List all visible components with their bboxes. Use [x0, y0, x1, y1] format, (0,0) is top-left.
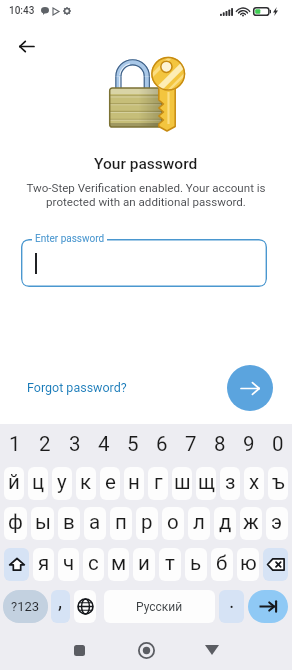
- staticText: Two-Step Verification enabled. Your acco…: [26, 181, 266, 209]
- staticText: щ: [198, 470, 215, 494]
- button[interactable]: ч: [58, 548, 79, 581]
- staticText: ф: [8, 510, 23, 534]
- staticText: 7: [185, 432, 197, 456]
- button[interactable]: л: [188, 507, 210, 540]
- button[interactable]: ?123: [3, 590, 48, 623]
- staticText: ,: [58, 590, 63, 613]
- button[interactable]: о: [162, 507, 184, 540]
- button[interactable]: д: [214, 507, 236, 540]
- staticText: е: [105, 470, 116, 494]
- button[interactable]: Backspace: [263, 548, 288, 581]
- button[interactable]: 4: [89, 432, 118, 460]
- button[interactable]: е: [100, 467, 120, 500]
- button[interactable]: Recents: [61, 632, 97, 668]
- button[interactable]: и: [133, 548, 155, 581]
- button[interactable]: щ: [196, 467, 216, 500]
- staticText: ъ: [272, 470, 285, 494]
- staticText: 9: [243, 432, 255, 456]
- staticText: Русский: [136, 600, 183, 614]
- staticText: о: [167, 510, 179, 534]
- staticText: в: [63, 510, 75, 534]
- staticText: н: [128, 470, 140, 494]
- button[interactable]: 3: [60, 432, 89, 460]
- staticText: .: [229, 590, 235, 613]
- button[interactable]: ы: [31, 507, 54, 540]
- staticText: ж: [243, 510, 259, 534]
- button[interactable]: й: [4, 467, 24, 500]
- button[interactable]: 5: [118, 432, 147, 460]
- button[interactable]: ь: [185, 548, 207, 581]
- button[interactable]: в: [58, 507, 80, 540]
- staticText: х: [249, 470, 260, 494]
- staticText: п: [115, 510, 127, 534]
- staticText: к: [80, 470, 92, 494]
- button[interactable]: Forgot password?: [21, 376, 133, 399]
- staticText: 8: [214, 432, 226, 456]
- staticText: 3: [69, 432, 81, 456]
- staticText: р: [141, 510, 153, 534]
- button[interactable]: р: [136, 507, 158, 540]
- button[interactable]: 1: [0, 432, 30, 460]
- staticText: 2: [39, 432, 51, 456]
- button[interactable]: [21, 239, 267, 287]
- staticText: з: [225, 470, 236, 494]
- button[interactable]: 7: [176, 432, 205, 460]
- button[interactable]: х: [244, 467, 264, 500]
- staticText: д: [219, 510, 232, 534]
- button[interactable]: 0: [263, 432, 292, 460]
- button[interactable]: ш: [172, 467, 192, 500]
- staticText: с: [88, 551, 99, 575]
- button[interactable]: 2: [30, 432, 60, 460]
- staticText: 1: [9, 432, 21, 456]
- staticText: ц: [32, 470, 45, 494]
- staticText: 10:43: [9, 5, 35, 17]
- staticText: 0: [272, 432, 284, 456]
- button[interactable]: с: [83, 548, 104, 581]
- button[interactable]: з: [220, 467, 240, 500]
- staticText: и: [138, 551, 150, 575]
- staticText: ю: [240, 551, 257, 575]
- button[interactable]: у: [52, 467, 72, 500]
- staticText: а: [89, 510, 101, 534]
- button[interactable]: т: [159, 548, 181, 581]
- staticText: г: [154, 470, 163, 494]
- button[interactable]: к: [76, 467, 96, 500]
- button[interactable]: а: [84, 507, 106, 540]
- staticText: я: [38, 551, 50, 575]
- button[interactable]: ,: [51, 590, 70, 623]
- staticText: 4: [98, 432, 110, 456]
- button[interactable]: .: [219, 590, 244, 623]
- staticText: б: [216, 551, 228, 575]
- button[interactable]: ю: [237, 548, 259, 581]
- staticText: 5: [127, 432, 139, 456]
- button[interactable]: ж: [240, 507, 262, 540]
- staticText: й: [8, 470, 20, 494]
- staticText: м: [111, 551, 127, 575]
- button[interactable]: ц: [28, 467, 48, 500]
- button[interactable]: ф: [4, 507, 27, 540]
- staticText: ч: [63, 551, 75, 575]
- button[interactable]: э: [266, 507, 288, 540]
- button[interactable]: Back: [10, 30, 43, 63]
- button[interactable]: н: [124, 467, 144, 500]
- button[interactable]: Space: [104, 590, 215, 623]
- button[interactable]: Change language: [74, 590, 96, 623]
- button[interactable]: Home: [128, 632, 164, 668]
- button[interactable]: б: [211, 548, 233, 581]
- staticText: ш: [174, 470, 191, 494]
- staticText: Forgot password?: [27, 380, 127, 395]
- button[interactable]: Enter: [248, 590, 288, 623]
- button[interactable]: Continue: [227, 365, 273, 411]
- button[interactable]: 6: [147, 432, 176, 460]
- staticText: э: [271, 510, 283, 534]
- button[interactable]: ъ: [268, 467, 288, 500]
- button[interactable]: м: [108, 548, 129, 581]
- button[interactable]: г: [148, 467, 168, 500]
- button[interactable]: п: [110, 507, 132, 540]
- button[interactable]: Shift: [4, 548, 29, 581]
- staticText: ы: [35, 510, 51, 534]
- button[interactable]: 9: [234, 432, 263, 460]
- button[interactable]: я: [33, 548, 54, 581]
- button[interactable]: 8: [205, 432, 234, 460]
- button[interactable]: Back: [194, 632, 230, 668]
